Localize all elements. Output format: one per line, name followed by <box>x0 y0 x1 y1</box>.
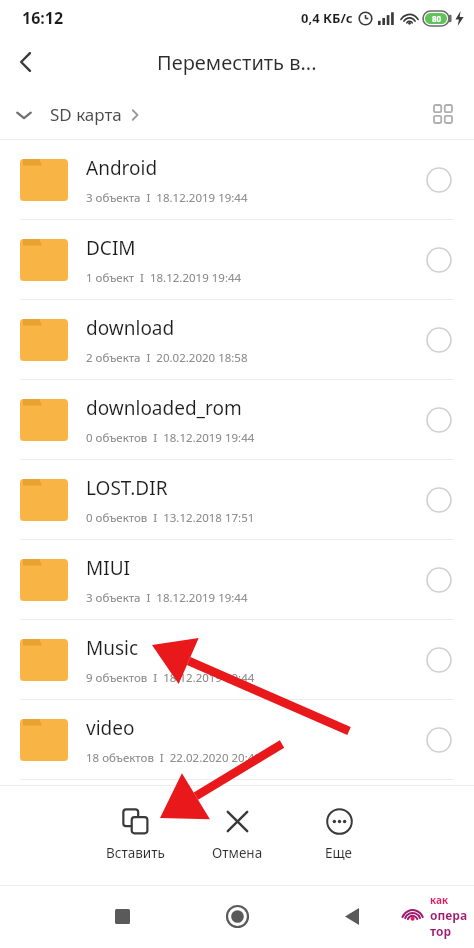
staticText: 80 <box>432 13 442 24</box>
staticText: тор <box>430 923 452 939</box>
staticText: Еще <box>325 844 353 862</box>
button[interactable]: Отмена <box>192 804 282 866</box>
staticText: DCIM <box>86 235 136 261</box>
button[interactable]: Select download <box>422 323 456 357</box>
staticText: Music <box>86 635 139 661</box>
button[interactable]: Select video <box>422 723 456 757</box>
button[interactable]: Back <box>0 36 52 88</box>
staticText: 0,4 КБ/с <box>301 9 353 27</box>
staticText: 3 объекта I 18.12.2019 19:44 <box>86 590 248 606</box>
button[interactable]: Еще <box>294 804 384 866</box>
button[interactable]: Android <box>0 140 474 220</box>
button[interactable]: DCIM <box>0 220 474 300</box>
staticText: 18 объектов I 22.02.2020 20:40 <box>86 750 261 766</box>
button[interactable]: MIUI <box>0 540 474 620</box>
staticText: Переместить в... <box>157 49 317 76</box>
button[interactable]: Music <box>0 620 474 700</box>
button[interactable]: SD карта <box>14 103 142 126</box>
button[interactable]: Select MIUI <box>422 563 456 597</box>
staticText: 2 объекта I 20.02.2020 18:58 <box>86 350 248 366</box>
staticText: Отмена <box>212 844 263 862</box>
staticText: MIUI <box>86 555 131 581</box>
button[interactable]: Grid view <box>426 97 460 131</box>
button[interactable]: Home <box>215 894 259 938</box>
button[interactable]: Select downloaded_rom <box>422 403 456 437</box>
button[interactable]: downloaded_rom <box>0 380 474 460</box>
staticText: video <box>86 715 135 741</box>
button[interactable]: download <box>0 300 474 380</box>
staticText: 9 объектов I 18.12.2019 19:44 <box>86 670 255 686</box>
button[interactable]: Select DCIM <box>422 243 456 277</box>
staticText: опера <box>430 907 468 923</box>
staticText: download <box>86 315 175 341</box>
button[interactable]: Select Android <box>422 163 456 197</box>
button[interactable]: Back <box>330 894 374 938</box>
staticText: Android <box>86 155 158 181</box>
staticText: SD карта <box>50 103 122 126</box>
staticText: LOST.DIR <box>86 475 168 501</box>
button[interactable]: Select Music <box>422 643 456 677</box>
button[interactable]: Вставить <box>90 804 180 866</box>
button[interactable]: Recents <box>100 894 144 938</box>
staticText: 1 объект I 18.12.2019 19:44 <box>86 270 242 286</box>
staticText: 0 объектов I 18.12.2019 19:44 <box>86 430 255 446</box>
button[interactable]: Select LOST.DIR <box>422 483 456 517</box>
button[interactable]: LOST.DIR <box>0 460 474 540</box>
staticText: 0 объектов I 13.12.2018 17:51 <box>86 510 255 526</box>
staticText: как <box>430 893 449 907</box>
staticText: 3 объекта I 18.12.2019 19:44 <box>86 190 248 206</box>
button[interactable]: video <box>0 700 474 780</box>
staticText: downloaded_rom <box>86 395 242 421</box>
staticText: 16:12 <box>22 7 64 29</box>
staticText: Вставить <box>106 844 165 862</box>
